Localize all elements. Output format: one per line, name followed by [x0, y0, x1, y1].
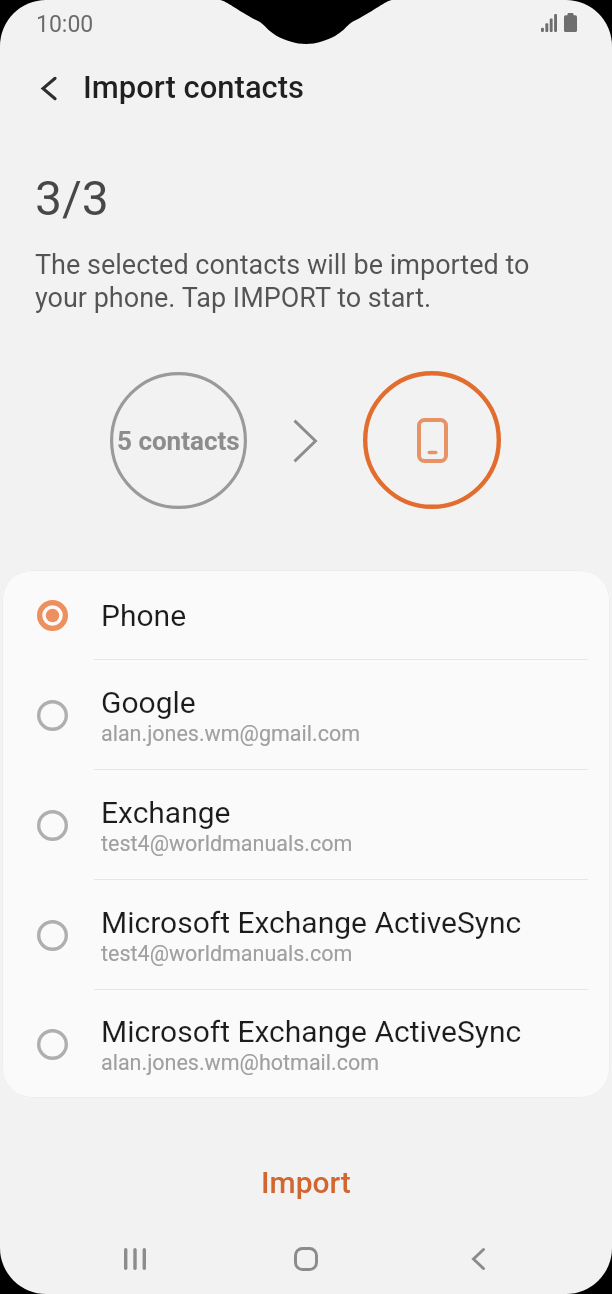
staticText: test4@worldmanuals.com [101, 941, 353, 966]
staticText: 10:00 [36, 11, 94, 38]
button[interactable]: Import [0, 1142, 612, 1222]
button[interactable]: Back [22, 62, 74, 114]
staticText: The selected contacts will be imported t… [35, 249, 530, 314]
staticText: 5 contacts [117, 426, 240, 456]
staticText: Microsoft Exchange ActiveSync [101, 905, 522, 940]
button[interactable]: Microsoft Exchange ActiveSync [2, 880, 610, 990]
staticText: Exchange [101, 795, 231, 830]
staticText: test4@worldmanuals.com [101, 831, 353, 856]
staticText: Phone [101, 598, 187, 633]
button[interactable]: Back [448, 1229, 508, 1289]
staticText: 3/3 [35, 170, 109, 226]
button[interactable]: Phone [2, 570, 610, 660]
staticText: Google [101, 685, 196, 720]
button[interactable]: Recent apps [105, 1229, 165, 1289]
button[interactable]: Home [276, 1229, 336, 1289]
staticText: Import [261, 1165, 351, 1200]
staticText: Import contacts [83, 69, 305, 105]
staticText: alan.jones.wm@gmail.com [101, 721, 361, 746]
button[interactable]: Google [2, 660, 610, 770]
staticText: Microsoft Exchange ActiveSync [101, 1014, 522, 1049]
button[interactable]: Exchange [2, 770, 610, 880]
staticText: alan.jones.wm@hotmail.com [101, 1050, 380, 1075]
button[interactable]: Microsoft Exchange ActiveSync [2, 990, 610, 1098]
